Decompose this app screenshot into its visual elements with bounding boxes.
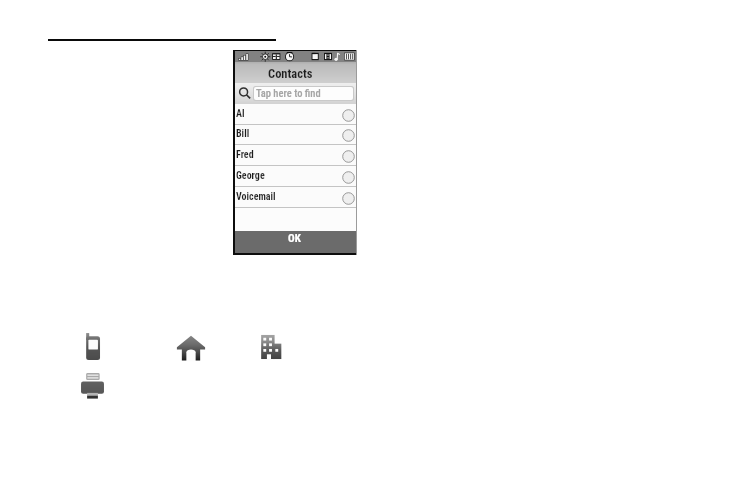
button[interactable]: OK (235, 231, 356, 253)
button[interactable]: Search (237, 85, 252, 100)
button[interactable]: Fax (79, 371, 106, 401)
staticText: OK (288, 232, 301, 245)
button[interactable]: Work (259, 333, 283, 361)
button[interactable]: Al (235, 104, 356, 124)
staticText: Contacts (268, 66, 313, 81)
button[interactable]: Tap here to find (254, 87, 353, 100)
button[interactable]: Mobile phone (84, 332, 102, 362)
button[interactable]: Voicemail (235, 187, 356, 207)
staticText: Tap here to find (256, 87, 321, 99)
staticText: Voicemail (236, 191, 342, 203)
button[interactable]: Home (176, 334, 206, 362)
staticText: George (236, 170, 342, 182)
staticText: Fred (236, 149, 342, 161)
button[interactable]: George (235, 166, 356, 186)
button[interactable]: Fred (235, 145, 356, 165)
button[interactable]: Bill (235, 125, 356, 144)
staticText: Bill (236, 128, 342, 140)
staticText: Al (236, 108, 342, 120)
